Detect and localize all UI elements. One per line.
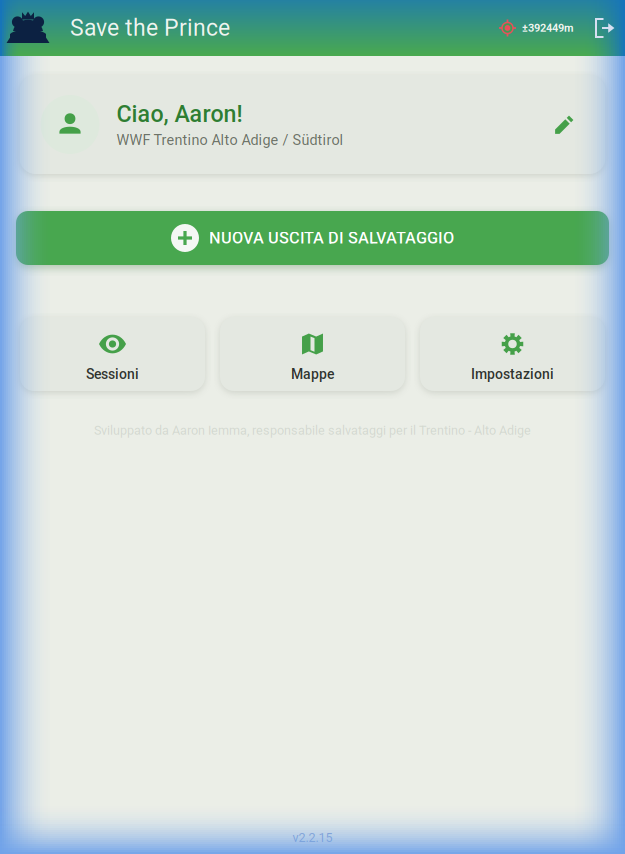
staticText: Save the Prince	[70, 14, 230, 41]
button[interactable]: Ciao, Aaron!	[19, 75, 605, 174]
staticText: v2.2.15	[292, 830, 332, 845]
staticText: Sessioni	[86, 366, 139, 382]
button[interactable]: NUOVA USCITA DI SALVATAGGIO	[16, 211, 609, 265]
staticText: ±392449m	[522, 22, 574, 34]
button[interactable]: Esci	[585, 6, 625, 50]
staticText: Impostazioni	[471, 366, 554, 382]
staticText: Mappe	[291, 366, 334, 382]
staticText: Ciao, Aaron!	[116, 100, 242, 128]
staticText: Sviluppato da Aaron Iemma, responsabile …	[94, 423, 531, 438]
button[interactable]: Impostazioni	[420, 317, 605, 391]
button[interactable]: Sessioni	[20, 317, 205, 391]
button[interactable]: Mappe	[220, 317, 405, 391]
staticText: WWF Trentino Alto Adige / Südtirol	[116, 132, 343, 149]
staticText: NUOVA USCITA DI SALVATAGGIO	[209, 228, 454, 247]
